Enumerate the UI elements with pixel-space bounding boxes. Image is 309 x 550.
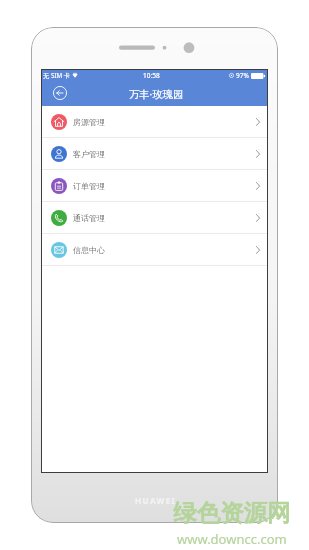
staticText: 通话管理 [73, 213, 105, 223]
staticText: 97% [236, 71, 249, 80]
staticText: 信息中心 [73, 245, 105, 255]
staticText: HUAWEI [135, 495, 177, 506]
button[interactable]: 通话管理 [42, 202, 267, 233]
staticText: 客户管理 [73, 149, 105, 159]
staticText: 无 SIM 卡 [43, 71, 71, 80]
button[interactable]: 信息中心 [42, 234, 267, 265]
button[interactable]: 房源管理 [42, 106, 267, 137]
button[interactable]: 订单管理 [42, 170, 267, 201]
staticText: 绿色资源网 [173, 498, 291, 528]
button[interactable]: 客户管理 [42, 138, 267, 169]
staticText: 订单管理 [73, 181, 105, 191]
button[interactable]: Back [49, 82, 70, 103]
staticText: www.downcc.com [177, 530, 287, 548]
staticText: 10:58 [143, 71, 160, 80]
staticText: 房源管理 [73, 117, 105, 127]
staticText: 万丰·玫瑰园 [129, 87, 184, 101]
